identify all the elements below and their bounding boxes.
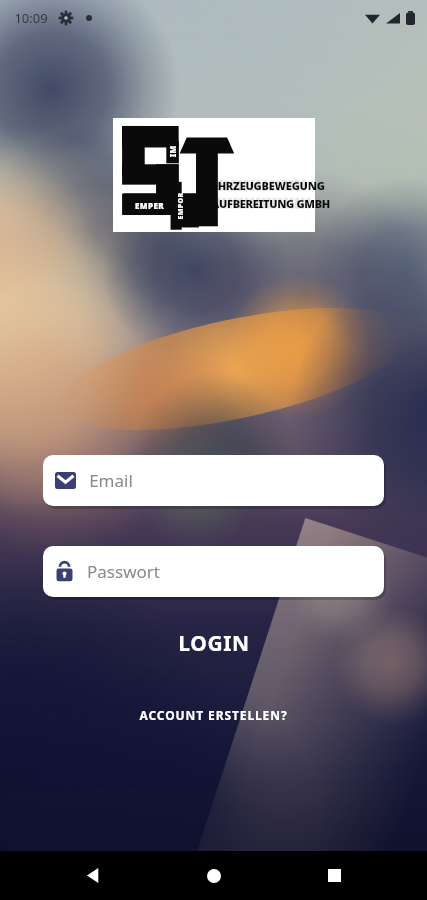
staticText: EMPER [135,200,164,211]
button[interactable]: LOGIN [150,621,278,666]
staticText: -AUFBEREITUNG GMBH [208,196,330,211]
staticText: LOGIN [178,629,250,658]
button[interactable]: Back [66,851,120,900]
other: Email [55,472,76,489]
staticText: IM [166,145,177,157]
staticText: ACCOUNT ERSTELLEN? [139,707,288,723]
button[interactable]: ACCOUNT ERSTELLEN? [125,700,302,730]
button[interactable]: Passwort [43,546,384,597]
staticText: 10:09 [14,9,48,27]
button[interactable]: Email [43,455,384,506]
button[interactable]: Home [187,851,241,900]
button[interactable]: Recent apps [307,851,361,900]
staticText: Passwort [87,560,160,583]
other: Passwort [55,561,74,582]
staticText: FAHRZEUGBEWEGUNG [204,178,325,193]
staticText: & [179,190,199,224]
staticText: EMPOR [175,192,185,219]
staticText: Email [89,469,133,492]
